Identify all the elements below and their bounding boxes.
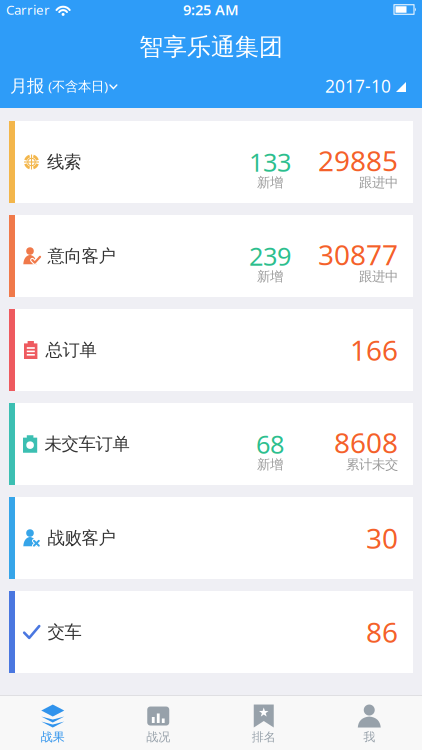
button[interactable]: 月报: [10, 75, 118, 97]
button[interactable]: 线索: [9, 121, 413, 203]
staticText: 8608: [334, 424, 398, 461]
button[interactable]: 战败客户: [9, 497, 413, 579]
staticText: 跟进中: [359, 268, 398, 285]
staticText: 166: [350, 331, 398, 369]
staticText: 智享乐通集团: [139, 32, 283, 62]
staticText: Carrier: [6, 1, 50, 18]
button[interactable]: 总订单: [9, 309, 413, 391]
staticText: 68: [256, 427, 284, 461]
staticText: 意向客户: [47, 245, 115, 267]
staticText: 排名: [252, 729, 276, 744]
staticText: (不含本日): [48, 77, 108, 95]
staticText: 新增: [257, 174, 283, 191]
staticText: 2017-10: [325, 74, 391, 97]
staticText: 30877: [318, 236, 398, 273]
staticText: 新增: [257, 268, 283, 285]
staticText: 9:25 AM: [183, 0, 239, 19]
staticText: 战果: [41, 729, 65, 744]
staticText: 跟进中: [359, 174, 398, 191]
staticText: 133: [249, 145, 291, 179]
staticText: 29885: [318, 142, 398, 179]
staticText: 战败客户: [47, 527, 115, 549]
staticText: 战况: [146, 729, 170, 744]
staticText: 月报: [10, 75, 44, 97]
button[interactable]: 排名: [211, 696, 316, 750]
staticText: 线索: [47, 151, 81, 173]
staticText: 239: [249, 239, 291, 273]
button[interactable]: 交车: [9, 591, 413, 673]
staticText: 30: [366, 519, 398, 557]
button[interactable]: 未交车订单: [9, 403, 413, 485]
staticText: 总订单: [45, 339, 96, 361]
button[interactable]: 战果: [0, 696, 105, 750]
staticText: 我: [363, 729, 375, 744]
button[interactable]: 我: [316, 696, 422, 750]
staticText: 新增: [257, 456, 283, 473]
staticText: 未交车订单: [44, 433, 129, 455]
staticText: 86: [366, 613, 398, 651]
button[interactable]: 意向客户: [9, 215, 413, 297]
staticText: 累计未交: [346, 456, 398, 473]
button[interactable]: 战况: [105, 696, 211, 750]
button[interactable]: 选择月份: [325, 74, 406, 97]
staticText: 交车: [47, 621, 81, 643]
